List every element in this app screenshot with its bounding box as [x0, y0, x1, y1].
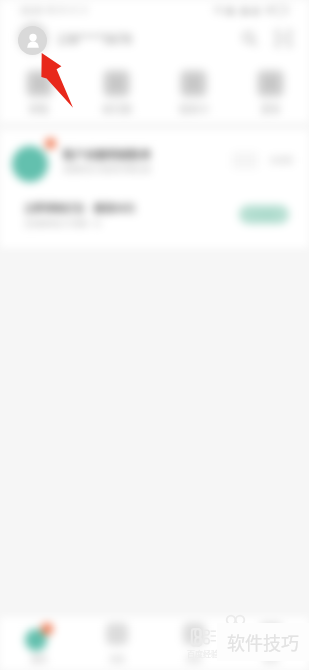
button[interactable]: 收付款 — [78, 63, 155, 122]
button[interactable]: 消息 — [78, 617, 155, 670]
button[interactable]: 账户余额明细账单 — [0, 130, 309, 190]
staticText: 信用卡 — [179, 101, 209, 115]
staticText: 百度经验 — [187, 648, 219, 660]
staticText: 转账 — [29, 101, 49, 115]
staticText: 查看收支与账单详情记录 — [63, 163, 151, 175]
staticText: 立即领取红包 · 最高88元 — [24, 200, 136, 214]
staticText: 更多 — [261, 101, 281, 115]
staticText: 软件技巧 — [227, 629, 299, 655]
staticText: 活动期间每日可领取一次 — [24, 218, 101, 228]
staticText: 发现 — [186, 653, 202, 665]
button[interactable]: 信用卡 — [155, 63, 232, 122]
button[interactable]: Search — [235, 24, 263, 52]
staticText: 138****5678 — [57, 29, 132, 48]
button[interactable]: 发现 — [155, 617, 232, 670]
staticText: 我的 — [263, 653, 279, 665]
button[interactable]: 我的 — [232, 617, 309, 670]
button[interactable]: Profile avatar — [18, 23, 48, 53]
button[interactable]: 去领取 — [239, 205, 289, 224]
button[interactable]: Scan code — [269, 24, 297, 52]
button[interactable]: 立即领取红包 · 最高88元 — [0, 190, 309, 238]
button[interactable]: Profile avatar — [18, 26, 47, 55]
staticText: 账户余额明细账单 — [63, 146, 151, 162]
staticText: 首页 — [31, 653, 47, 665]
staticText: 去领取 — [252, 209, 276, 221]
button[interactable]: 转账 — [0, 63, 78, 122]
staticText: 收付款 — [102, 101, 132, 115]
button[interactable]: 更多 — [232, 63, 309, 122]
button[interactable]: 首页 — [0, 617, 78, 670]
